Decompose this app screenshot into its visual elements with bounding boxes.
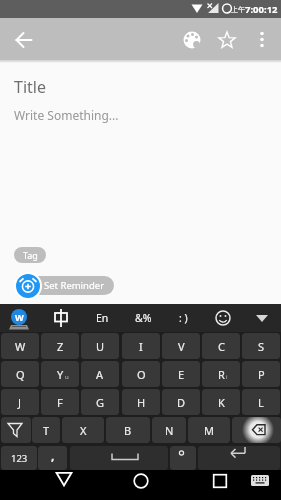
button[interactable]: Tag xyxy=(14,247,46,263)
staticText: 7:00:12 xyxy=(245,3,278,16)
staticText: W xyxy=(15,339,26,354)
button[interactable]: Set Reminder xyxy=(28,276,114,295)
button[interactable]: R xyxy=(202,361,240,387)
button[interactable] xyxy=(215,28,239,52)
button[interactable]: : ) xyxy=(168,305,198,331)
button[interactable] xyxy=(180,28,204,52)
staticText: , xyxy=(51,447,55,463)
button[interactable]: T xyxy=(32,417,60,443)
button[interactable]: 123 xyxy=(1,446,37,470)
button[interactable] xyxy=(170,446,196,470)
staticText: N xyxy=(165,423,174,438)
staticText: D xyxy=(177,395,186,410)
button[interactable] xyxy=(250,27,274,53)
button[interactable] xyxy=(204,470,236,496)
staticText: M xyxy=(204,423,214,438)
button[interactable] xyxy=(125,470,157,496)
staticText: Z xyxy=(57,339,64,354)
button[interactable] xyxy=(70,446,168,470)
staticText: B xyxy=(124,423,132,438)
staticText: S xyxy=(258,339,265,354)
staticText: 123 xyxy=(11,452,28,465)
button[interactable]: N xyxy=(152,417,186,443)
staticText: Title xyxy=(14,76,46,98)
staticText: T xyxy=(43,423,50,438)
staticText: J xyxy=(18,395,22,410)
staticText: X xyxy=(80,423,87,438)
button[interactable] xyxy=(46,305,76,331)
staticText: O xyxy=(137,367,146,382)
button[interactable]: B xyxy=(106,417,150,443)
button[interactable]: &% xyxy=(128,305,158,331)
button[interactable]: X xyxy=(62,417,104,443)
button[interactable]: Q xyxy=(1,361,39,387)
button[interactable]: M xyxy=(188,417,230,443)
button[interactable]: K xyxy=(202,389,240,415)
button[interactable]: D xyxy=(162,389,200,415)
button[interactable] xyxy=(8,24,40,56)
button[interactable] xyxy=(246,470,274,492)
staticText: i xyxy=(226,373,228,381)
staticText: &% xyxy=(135,311,152,325)
button[interactable] xyxy=(232,417,281,443)
button[interactable]: H xyxy=(122,389,160,415)
staticText: R xyxy=(218,367,225,382)
button[interactable] xyxy=(48,470,80,496)
staticText: A xyxy=(96,367,104,382)
button[interactable] xyxy=(198,446,280,470)
staticText: Y xyxy=(57,367,64,382)
button[interactable]: Z xyxy=(41,333,79,359)
staticText: u xyxy=(65,373,69,381)
button[interactable]: W xyxy=(4,305,36,331)
button[interactable]: F xyxy=(41,389,79,415)
button[interactable]: C xyxy=(202,333,240,359)
button[interactable]: P xyxy=(242,361,280,387)
staticText: V xyxy=(178,339,185,354)
staticText: En xyxy=(96,311,109,325)
button[interactable]: L xyxy=(242,389,280,415)
button[interactable]: J xyxy=(1,389,39,415)
button[interactable]: W xyxy=(1,333,39,359)
button[interactable]: En xyxy=(88,305,116,331)
staticText: E xyxy=(178,367,185,382)
button[interactable] xyxy=(208,305,238,331)
staticText: W xyxy=(15,311,24,323)
staticText: Set Reminder xyxy=(44,279,105,292)
button[interactable] xyxy=(248,305,276,331)
button[interactable]: Y xyxy=(41,361,79,387)
button[interactable] xyxy=(1,417,31,443)
button[interactable]: O xyxy=(122,361,160,387)
button[interactable]: A xyxy=(81,361,119,387)
staticText: Q xyxy=(16,367,25,382)
staticText: Tag xyxy=(23,249,38,261)
staticText: I xyxy=(139,339,143,354)
button[interactable]: I xyxy=(122,333,160,359)
staticText: 上午 xyxy=(231,5,245,14)
staticText: Write Something... xyxy=(14,107,119,123)
button[interactable]: G xyxy=(81,389,119,415)
staticText: K xyxy=(218,395,225,410)
staticText: H xyxy=(137,395,146,410)
staticText: U xyxy=(96,339,105,354)
button[interactable]: , xyxy=(38,446,67,470)
staticText: G xyxy=(96,395,105,410)
staticText: P xyxy=(258,367,265,382)
button[interactable]: V xyxy=(162,333,200,359)
staticText: F xyxy=(57,395,63,410)
button[interactable]: U xyxy=(81,333,119,359)
staticText: : ) xyxy=(179,311,188,325)
staticText: L xyxy=(258,395,264,410)
button[interactable]: S xyxy=(242,333,280,359)
staticText: C xyxy=(218,339,225,354)
button[interactable] xyxy=(14,272,42,300)
button[interactable]: E xyxy=(162,361,200,387)
